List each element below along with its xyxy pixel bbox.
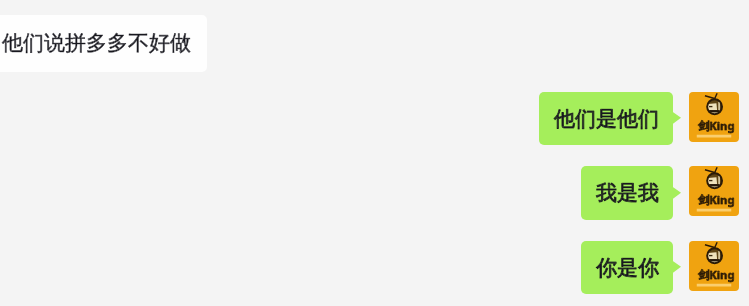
button[interactable]: 我是我 bbox=[581, 166, 673, 220]
staticText: 剑King bbox=[698, 267, 735, 282]
staticText: 你是你 bbox=[596, 255, 659, 281]
button[interactable]: 你是你 bbox=[581, 241, 673, 294]
staticText: 你是你 bbox=[596, 255, 659, 281]
staticText: 剑King bbox=[698, 118, 735, 133]
staticText: 剑King bbox=[698, 118, 735, 133]
button[interactable]: Profile avatar bbox=[689, 241, 739, 291]
button[interactable]: Profile avatar bbox=[689, 92, 739, 142]
staticText: 他们是他们 bbox=[554, 106, 659, 132]
staticText: 他们是他们 bbox=[554, 106, 659, 132]
button[interactable]: 他们说拼多多不好做 bbox=[0, 15, 207, 72]
staticText: 剑King bbox=[698, 192, 735, 207]
staticText: 我是我 bbox=[596, 180, 659, 206]
staticText: 剑King bbox=[698, 192, 735, 207]
staticText: 他们说拼多多不好做 bbox=[2, 30, 191, 56]
button[interactable]: Profile avatar bbox=[689, 166, 739, 216]
staticText: 剑King bbox=[698, 267, 735, 282]
button[interactable]: 他们是他们 bbox=[539, 92, 673, 145]
staticText: 他们说拼多多不好做 bbox=[2, 30, 191, 56]
staticText: 我是我 bbox=[596, 180, 659, 206]
